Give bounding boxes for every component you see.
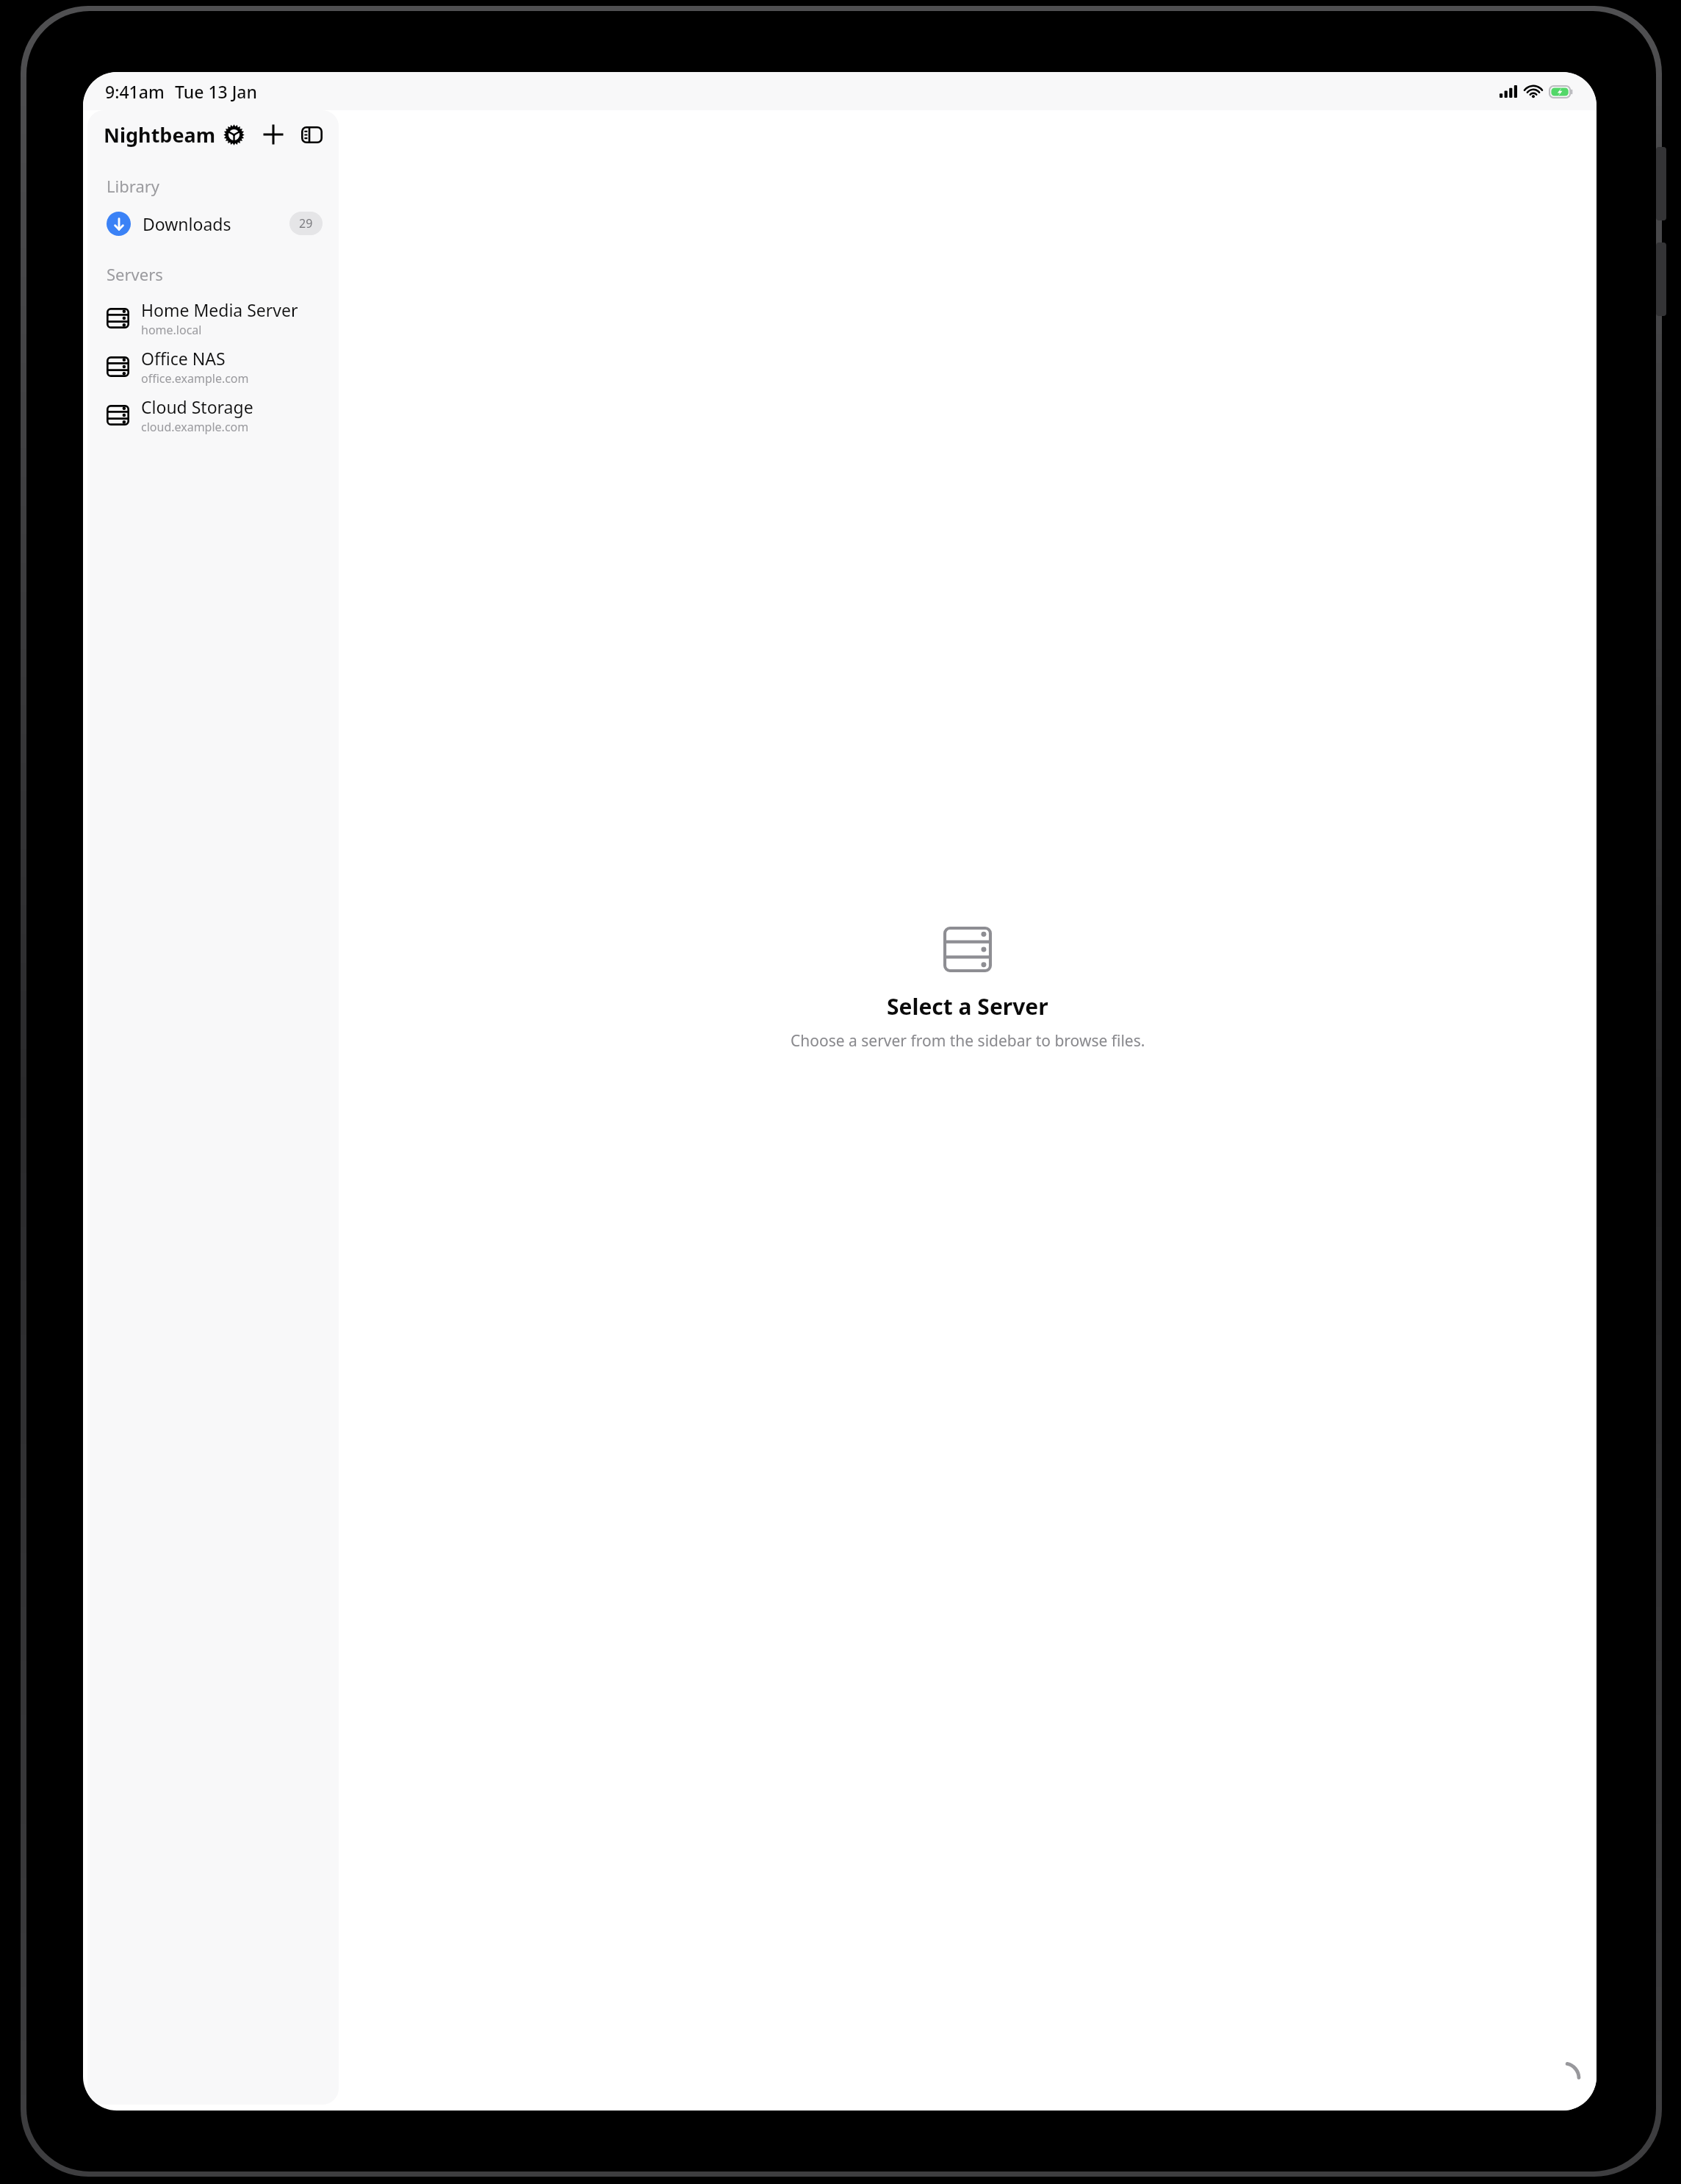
staticText: 9:41am — [105, 80, 165, 103]
staticText: office.example.com — [141, 370, 249, 387]
button[interactable]: Settings — [216, 117, 251, 152]
button[interactable]: Add server — [256, 117, 291, 152]
staticText: Tue 13 Jan — [175, 80, 257, 103]
staticText: 29 — [299, 215, 313, 231]
button[interactable]: Cloud Storage — [87, 391, 339, 439]
button[interactable]: Home Media Server — [87, 294, 339, 342]
staticText: Library — [107, 175, 160, 197]
button[interactable]: Toggle sidebar — [295, 117, 328, 152]
staticText: home.local — [141, 322, 202, 338]
staticText: Office NAS — [141, 347, 226, 370]
staticText: Select a Server — [887, 991, 1048, 1021]
staticText: Nightbeam — [104, 121, 216, 148]
staticText: Servers — [107, 263, 163, 285]
staticText: cloud.example.com — [141, 419, 249, 435]
button[interactable]: Downloads — [87, 203, 339, 244]
staticText: Cloud Storage — [141, 395, 253, 418]
button[interactable]: Office NAS — [87, 342, 339, 391]
staticText: Downloads — [143, 212, 231, 235]
staticText: Choose a server from the sidebar to brow… — [791, 1030, 1145, 1052]
staticText: Home Media Server — [141, 298, 298, 321]
